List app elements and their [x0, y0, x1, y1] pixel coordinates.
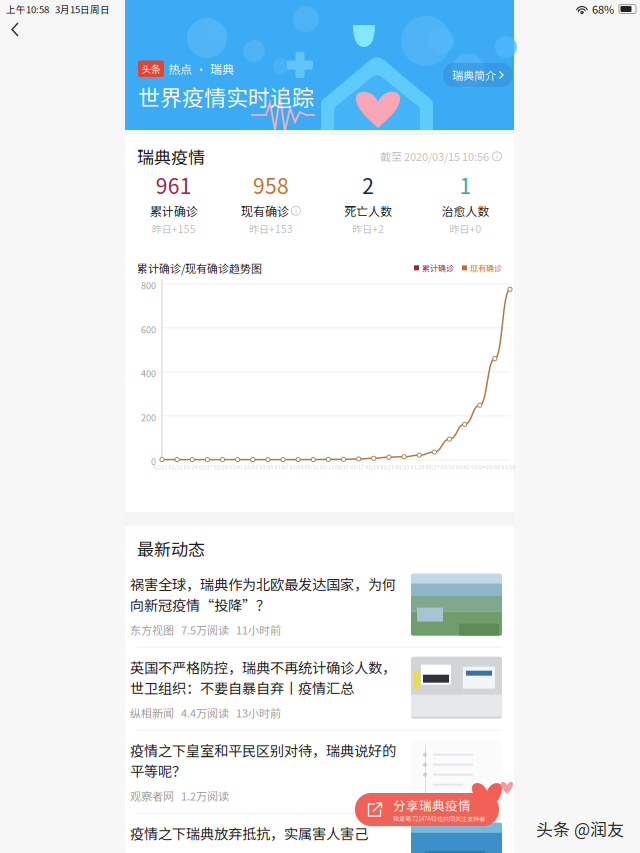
staticText: 头条 @润友 — [536, 816, 624, 841]
staticText: 累计确诊 — [150, 202, 198, 219]
staticText: 最新动态 — [137, 536, 205, 561]
staticText: 400 — [141, 367, 156, 380]
staticText: 现有确诊 — [241, 202, 289, 219]
staticText: 03/09 — [290, 464, 304, 470]
staticText: 截至 2020/03/15 10:56 — [380, 148, 489, 164]
button[interactable]: Back — [2, 18, 32, 44]
staticText: 03/13 — [320, 464, 334, 470]
staticText: 东方视图 — [130, 622, 174, 638]
staticText: 03/02 — [456, 464, 470, 470]
button[interactable]: 英国不严格防控，瑞典不再统计确诊人数，世卫组织：不要自暴自弃丨疫情汇总 — [125, 648, 514, 730]
staticText: 800 — [141, 279, 156, 292]
staticText: 累计确诊 — [422, 262, 454, 274]
staticText: 头条 — [141, 61, 161, 76]
staticText: i — [496, 151, 498, 161]
button[interactable]: 祸害全球，瑞典作为北欧最发达国家，为何向新冠疫情“投降”？ — [125, 565, 514, 647]
staticText: 治愈人数 — [441, 202, 489, 219]
staticText: 02/28 — [214, 464, 228, 470]
staticText: 03/27 — [426, 464, 440, 470]
staticText: 1 — [459, 170, 471, 200]
staticText: 03/23 — [396, 464, 410, 470]
staticText: 03/19 — [365, 464, 379, 470]
staticText: 03/01 — [229, 464, 243, 470]
staticText: 02/22 — [169, 464, 183, 470]
staticText: 600 — [141, 323, 156, 336]
staticText: 3月15日周日 — [55, 2, 110, 16]
staticText: i — [295, 206, 297, 216]
button[interactable]: 分享瑞典疫情 — [355, 793, 499, 826]
staticText: 祸害全球，瑞典作为北欧最发达国家，为何向新冠疫情“投降”？ — [130, 574, 396, 615]
staticText: 03/29 — [441, 464, 455, 470]
staticText: 疫情之下瑞典放弃抵抗，实属害人害己 — [130, 823, 368, 843]
staticText: 观察者网 — [130, 788, 174, 804]
staticText: 03/07 — [274, 464, 288, 470]
staticText: 昨日+153 — [249, 221, 293, 236]
staticText: 现有确诊 — [470, 262, 502, 274]
staticText: 2 — [362, 170, 374, 200]
staticText: 03/04 — [471, 464, 485, 470]
staticText: 13小时前 — [236, 705, 281, 721]
staticText: 上午10:58 — [6, 2, 49, 16]
staticText: 03/21 — [380, 464, 394, 470]
staticText: 7.5万阅读 — [181, 622, 229, 638]
staticText: 瑞典疫情 — [137, 144, 205, 169]
staticText: 02/27 — [199, 464, 213, 470]
staticText: 11小时前 — [236, 622, 281, 638]
staticText: 03/11 — [305, 464, 319, 470]
staticText: 1.2万阅读 — [181, 788, 229, 804]
staticText: 03/17 — [350, 464, 364, 470]
staticText: 03/05 — [259, 464, 273, 470]
staticText: 02/24 — [184, 464, 198, 470]
staticText: 03/03 — [244, 464, 258, 470]
staticText: 4.4万阅读 — [181, 705, 229, 721]
staticText: 分享瑞典疫情 — [393, 796, 471, 814]
button[interactable]: 瑞典简介 — [443, 63, 513, 87]
staticText: 累计确诊/现有确诊趋势图 — [137, 260, 262, 276]
button[interactable]: 疫情之下皇室和平民区别对待，瑞典说好的平等呢？ — [125, 731, 514, 813]
button[interactable]: 疫情之下瑞典放弃抵抗，实属害人害己 — [125, 814, 514, 853]
staticText: 我是第 72147443 位共同关注支持者 — [393, 814, 485, 823]
staticText: 958 — [253, 170, 289, 200]
staticText: 死亡人数 — [344, 202, 392, 219]
staticText: 疫情之下皇室和平民区别对待，瑞典说好的平等呢？ — [130, 740, 396, 781]
staticText: 961 — [156, 170, 192, 200]
staticText: 昨日+2 — [352, 221, 384, 236]
staticText: 昨日+155 — [152, 221, 196, 236]
staticText: 瑞典简介 — [452, 67, 496, 83]
staticText: 200 — [141, 411, 156, 424]
staticText: 02/21 — [153, 464, 167, 470]
staticText: 03/10 — [501, 464, 515, 470]
staticText: 03/08 — [486, 464, 500, 470]
staticText: 03/25 — [411, 464, 425, 470]
staticText: 68% — [592, 1, 614, 17]
staticText: 0 — [151, 455, 156, 468]
staticText: 世界疫情实时追踪 — [138, 80, 314, 112]
staticText: 英国不严格防控，瑞典不再统计确诊人数，世卫组织：不要自暴自弃丨疫情汇总 — [130, 657, 396, 698]
staticText: 03/15 — [335, 464, 349, 470]
staticText: 昨日+0 — [449, 221, 481, 236]
staticText: 纵相新闻 — [130, 705, 174, 721]
staticText: 热点 · 瑞典 — [168, 60, 234, 77]
